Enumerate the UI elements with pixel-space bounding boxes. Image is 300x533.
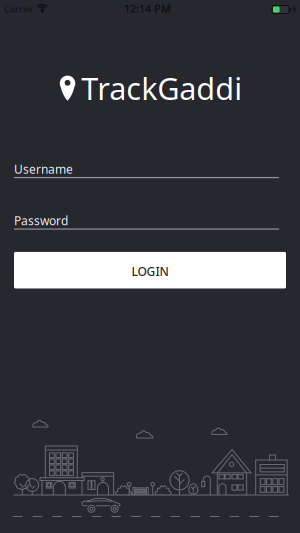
staticText: Username [14, 161, 73, 177]
button[interactable]: Password [14, 212, 279, 230]
staticText: TrackGaddi [81, 68, 242, 108]
staticText: LOGIN [131, 263, 168, 279]
button[interactable]: Username [14, 161, 279, 178]
staticText: 12:14 PM [124, 1, 171, 16]
button[interactable]: LOGIN [14, 252, 286, 288]
staticText: Password [14, 212, 68, 228]
staticText: Carrier [4, 3, 34, 15]
